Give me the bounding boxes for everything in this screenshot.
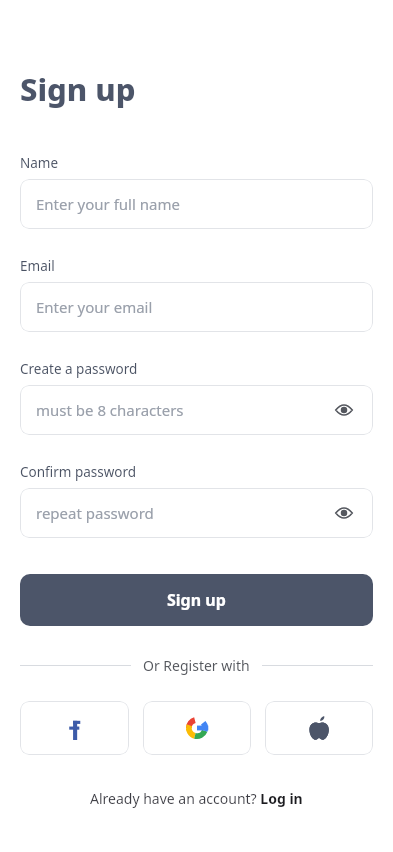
button[interactable]: Sign up with Apple [265,701,373,755]
staticText: must be 8 characters [36,400,331,420]
staticText: Enter your full name [36,194,357,214]
staticText: repeat password [36,503,331,523]
button[interactable]: must be 8 characters [20,385,373,435]
button[interactable]: Sign up with Google [143,701,251,755]
button[interactable]: Enter your email [20,282,373,332]
staticText: Confirm password [20,463,137,481]
button[interactable]: Show password [331,500,357,526]
button[interactable]: Sign up [20,574,373,626]
staticText: Name [20,154,59,172]
button[interactable]: repeat password [20,488,373,538]
staticText: Enter your email [36,297,357,317]
button[interactable]: Enter your full name [20,179,373,229]
button[interactable]: Sign up with Facebook [20,701,129,755]
staticText: Or Register with [143,656,250,675]
staticText: Sign up [167,589,226,611]
staticText: Email [20,257,55,275]
button[interactable]: Already have an account? Log in [90,789,303,808]
button[interactable]: Show password [331,397,357,423]
staticText: Sign up [20,68,136,110]
staticText: Create a password [20,360,138,378]
